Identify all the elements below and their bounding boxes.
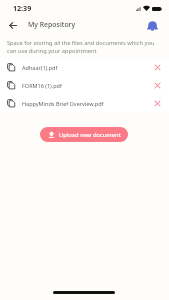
button[interactable]: Upload new document xyxy=(40,127,128,142)
button[interactable]: Adhaar(1).pdf xyxy=(0,58,169,76)
button[interactable]: Remove FORM16 (1).pdf xyxy=(150,78,164,92)
button[interactable]: Notifications xyxy=(144,17,160,33)
button[interactable]: FORM16 (1).pdf xyxy=(0,76,169,94)
button[interactable]: Remove Adhaar(1).pdf xyxy=(150,60,164,74)
button[interactable]: HappyMinds Brief Overview.pdf xyxy=(0,94,169,112)
staticText: HappyMinds Brief Overview.pdf xyxy=(22,100,104,107)
staticText: Adhaar(1).pdf xyxy=(22,64,58,71)
staticText: Upload new document xyxy=(59,131,121,139)
button[interactable]: Back xyxy=(5,17,21,33)
staticText: FORM16 (1).pdf xyxy=(22,82,62,89)
staticText: My Repository xyxy=(28,20,76,29)
staticText: 12:39 xyxy=(13,3,32,13)
button[interactable]: Remove HappyMinds Brief Overview.pdf xyxy=(150,96,164,110)
staticText: Space for storing all the files and docu… xyxy=(7,39,155,54)
